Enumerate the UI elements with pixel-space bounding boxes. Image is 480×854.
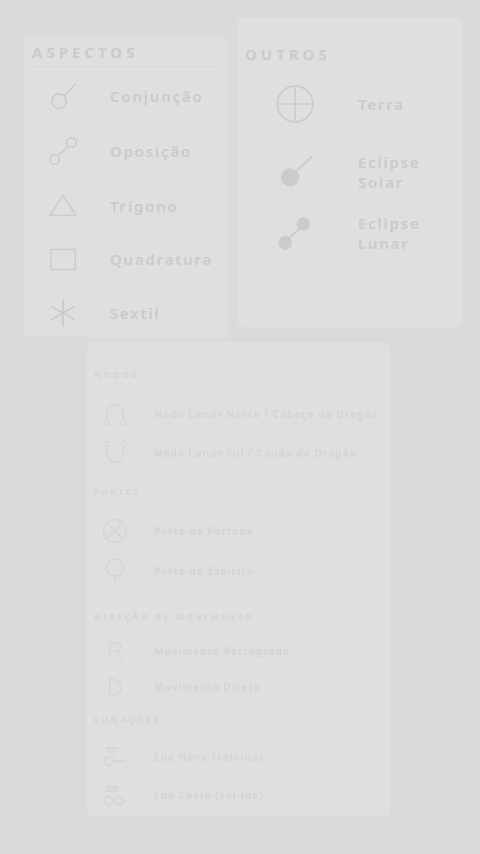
staticText: Lua Cheia (sol-lua) [154,788,264,802]
staticText: OUTROS [245,44,331,64]
staticText: PARTES [94,485,141,497]
staticText: Conjunção [110,86,204,106]
button[interactable]: Sextil [24,286,228,337]
button[interactable]: Oposição [24,124,228,178]
button[interactable]: Eclipse Lunar [237,206,462,260]
staticText: Lua Nova (sol+lua) [154,750,264,764]
staticText: ASPECTOS [32,42,139,62]
staticText: Parte do Espírito [154,564,254,578]
staticText: Eclipse Lunar [358,213,421,253]
staticText: Eclipse Solar [358,152,421,192]
staticText: DIREÇÃO DE MOVIMENTO [94,610,255,622]
staticText: Terra [358,94,405,114]
staticText: Quadratura [110,249,214,269]
staticText: Nodo Lunar Sul / Cauda do Dragão [154,446,357,460]
staticText: Sextil [110,303,161,323]
button[interactable]: Quadratura [24,232,228,286]
staticText: NODOS [94,368,139,380]
staticText: Movimento Direto [154,680,261,694]
staticText: Trígono [110,196,179,216]
staticText: Movimento Retrógrado [154,644,291,658]
button[interactable]: Conjunção [24,69,228,123]
button[interactable]: Trígono [24,179,228,233]
staticText: Nodo Lunar Norte / Cabeça do Dragão [154,407,379,421]
button[interactable]: Terra [237,77,462,131]
staticText: Parte da Fortuna [154,524,255,538]
button[interactable]: Eclipse Solar [237,145,462,199]
staticText: LUNAÇÕES [94,713,161,725]
staticText: Oposição [110,141,193,161]
